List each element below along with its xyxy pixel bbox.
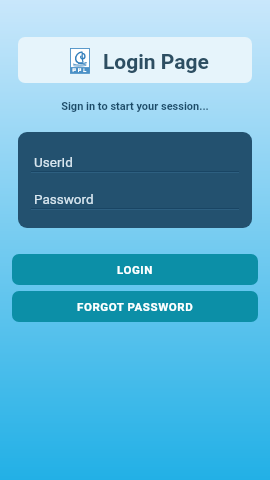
other: PPL logo [70, 48, 90, 74]
staticText: Login Page [103, 50, 209, 75]
staticText: Password [34, 191, 94, 207]
button[interactable]: FORGOT PASSWORD [12, 291, 258, 322]
staticText: FORGOT PASSWORD [77, 300, 194, 313]
button[interactable]: LOGIN [12, 254, 258, 285]
staticText: LOGIN [117, 263, 153, 276]
staticText: UserId [34, 154, 73, 170]
button[interactable]: UserId [31, 154, 239, 173]
staticText: Sign in to start your session... [0, 100, 270, 113]
button[interactable]: Password [31, 191, 239, 210]
